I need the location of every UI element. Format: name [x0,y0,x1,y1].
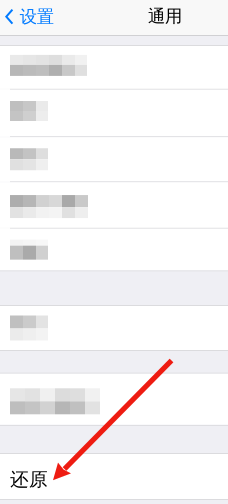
staticText: 还原 [10,468,48,491]
button[interactable] [0,374,228,425]
button[interactable] [0,46,228,89]
button[interactable] [0,137,228,181]
button[interactable] [0,306,228,350]
button[interactable] [0,229,228,270]
button[interactable]: 还原 [0,454,228,499]
staticText: 设置 [20,6,54,27]
staticText: 通用 [148,5,182,27]
button[interactable] [0,90,228,136]
button[interactable]: 设置 [0,0,62,35]
button[interactable] [0,182,228,228]
